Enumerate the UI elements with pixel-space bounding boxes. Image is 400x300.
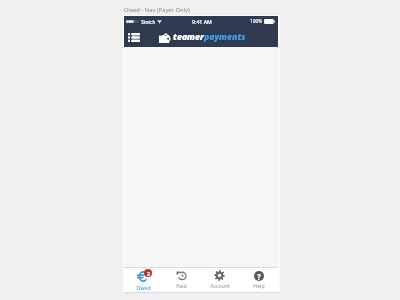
staticText: teamer	[173, 31, 204, 43]
button[interactable]: ?	[239, 268, 278, 291]
staticText: 100%	[250, 18, 263, 25]
button[interactable]: Paid	[162, 268, 200, 291]
button[interactable]: Account	[200, 268, 239, 291]
staticText: ?	[257, 271, 261, 281]
staticText: Sketch	[141, 19, 156, 25]
button[interactable]: Menu	[126, 29, 142, 45]
staticText: Owed - Nav (Payer Only)	[124, 6, 190, 14]
staticText: payments	[204, 31, 246, 43]
staticText: Help	[253, 282, 265, 289]
staticText: Account	[210, 282, 230, 289]
staticText: 9:41 AM	[192, 18, 212, 25]
staticText: Owed	[136, 284, 151, 291]
button[interactable]: 2	[124, 268, 162, 291]
staticText: 2	[147, 270, 150, 277]
staticText: Paid	[176, 282, 187, 289]
